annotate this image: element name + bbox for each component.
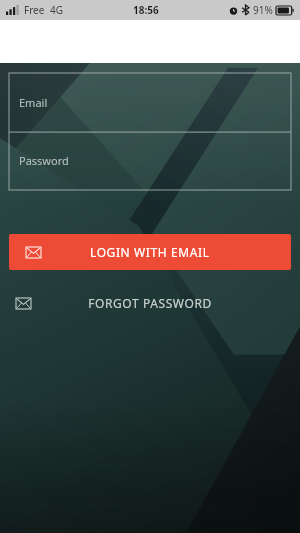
button[interactable]: Password: [9, 131, 291, 190]
button[interactable]: Email: [9, 73, 291, 131]
staticText: 91%: [253, 3, 273, 17]
button[interactable]: FORGOT PASSWORD: [9, 287, 291, 319]
staticText: 4G: [50, 3, 63, 17]
button[interactable]: LOGIN WITH EMAIL: [9, 234, 291, 270]
staticText: Email: [19, 95, 48, 110]
staticText: 18:56: [133, 3, 159, 17]
staticText: Free: [24, 3, 45, 17]
other: Email: [26, 247, 41, 258]
staticText: LOGIN WITH EMAIL: [90, 244, 210, 260]
other: Email: [16, 298, 31, 309]
staticText: Password: [19, 153, 69, 168]
staticText: FORGOT PASSWORD: [88, 295, 212, 311]
